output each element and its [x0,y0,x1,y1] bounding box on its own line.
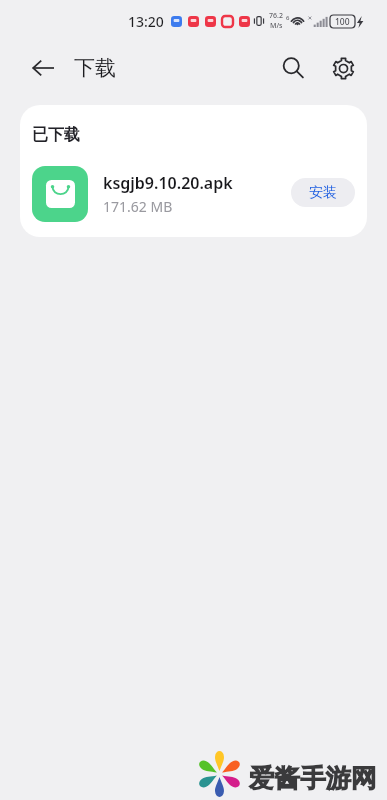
button[interactable]: Back [31,56,55,80]
button[interactable]: Settings [331,56,355,80]
button[interactable]: Search [281,56,305,80]
staticText: 下载 [74,55,116,81]
button[interactable]: 安装 [291,178,355,207]
staticText: 76.2 [269,11,283,21]
staticText: M/s [270,21,283,31]
button[interactable]: ksgjb9.10.20.apk [20,161,367,227]
staticText: 6 [286,14,290,22]
staticText: 13:20 [128,12,164,31]
staticText: 安装 [309,184,337,202]
staticText: 171.62 MB [103,197,173,216]
staticText: 100 [335,16,350,28]
staticText: 爱酱手游网 [249,762,377,794]
staticText: ksgjb9.10.20.apk [103,172,233,194]
staticText: 已下载 [32,125,80,145]
